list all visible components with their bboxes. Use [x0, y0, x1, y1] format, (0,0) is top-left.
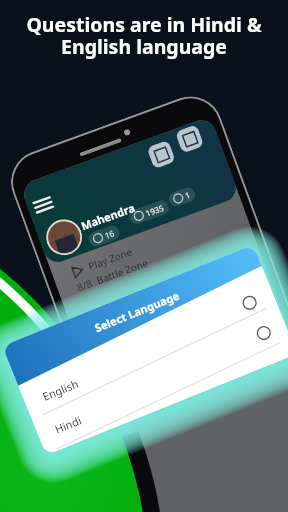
button[interactable]: 1: [172, 189, 192, 205]
staticText: Questions are in Hindi & English languag…: [0, 11, 288, 60]
button[interactable]: Store: [175, 124, 204, 154]
staticText: 1: [183, 189, 192, 201]
staticText: 8/8: [75, 276, 95, 294]
staticText: Select Language: [92, 288, 181, 335]
button[interactable]: 16: [92, 227, 116, 245]
staticText: 16: [103, 227, 116, 241]
button[interactable]: Translate: [146, 140, 176, 169]
button[interactable]: Menu: [33, 196, 53, 214]
staticText: Hindi: [52, 412, 84, 437]
button[interactable]: English: [17, 282, 282, 418]
button[interactable]: Hindi: [31, 317, 288, 454]
button[interactable]: Select Language: [2, 244, 268, 383]
staticText: Play Zone: [86, 244, 134, 273]
staticText: Mahendra: [79, 200, 137, 233]
staticText: Battle Zone: [95, 256, 150, 287]
staticText: 1935: [144, 202, 166, 218]
staticText: English: [40, 376, 81, 404]
button[interactable]: 1935: [133, 202, 166, 223]
